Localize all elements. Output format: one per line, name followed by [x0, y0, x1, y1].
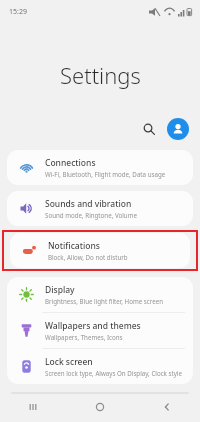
button[interactable]: Wallpapers and themes	[7, 313, 193, 348]
staticText: Screen lock type, Always On Display, Clo…	[45, 369, 182, 377]
staticText: Settings	[60, 60, 141, 90]
button[interactable]: Search	[136, 116, 162, 142]
button[interactable]: Sounds and vibration	[7, 191, 193, 226]
staticText: Notifications	[48, 240, 100, 252]
staticText: Sounds and vibration	[45, 198, 132, 210]
staticText: Wallpapers, Themes, Icons	[45, 333, 123, 341]
button[interactable]: Display	[7, 277, 193, 312]
button[interactable]: Lock screen	[7, 349, 193, 384]
staticText: 15:29	[9, 7, 27, 17]
staticText: Connections	[45, 157, 96, 169]
staticText: Sound mode, Ringtone, Volume	[45, 211, 137, 219]
button[interactable]: Notifications	[10, 233, 190, 268]
staticText: Display	[45, 284, 75, 296]
button[interactable]: Home	[66, 394, 133, 420]
button[interactable]: Recents	[0, 394, 66, 420]
staticText: Wi-Fi, Bluetooth, Flight mode, Data usag…	[45, 170, 166, 178]
staticText: Block, Allow, Do not disturb	[48, 253, 128, 261]
button[interactable]: Back	[133, 394, 200, 420]
staticText: Wallpapers and themes	[45, 320, 141, 332]
staticText: Brightness, Blue light filter, Home scre…	[45, 297, 164, 305]
staticText: Lock screen	[45, 356, 93, 368]
button[interactable]: Account	[167, 118, 189, 140]
button[interactable]: Connections	[7, 150, 193, 185]
